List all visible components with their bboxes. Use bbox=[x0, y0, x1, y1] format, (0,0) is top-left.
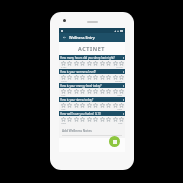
button[interactable]: Rate 8 of 10 bbox=[105, 102, 111, 108]
button[interactable]: Submit wellness entry bbox=[109, 136, 120, 147]
staticText: High bbox=[61, 122, 67, 125]
button[interactable]: Rate 6 of 10 bbox=[92, 74, 98, 80]
button[interactable]: Rate 6 of 10 bbox=[92, 102, 98, 108]
staticText: None bbox=[61, 80, 67, 83]
button[interactable]: Rate 6 of 10 bbox=[92, 116, 98, 122]
button[interactable]: How is your energy level today? bbox=[59, 83, 125, 88]
button[interactable]: Rate 3 of 10 bbox=[73, 60, 79, 66]
button[interactable]: Rate 9 of 10 bbox=[112, 102, 118, 108]
button[interactable]: Rate 2 of 10 bbox=[66, 74, 72, 80]
button[interactable]: Rate 1 of 10 bbox=[60, 74, 66, 80]
button[interactable]: Rate 6 of 10 bbox=[92, 60, 98, 66]
button[interactable]: Rate 5 of 10 bbox=[86, 60, 92, 66]
button[interactable]: Rate 8 of 10 bbox=[105, 60, 111, 66]
staticText: How is your soreness level? bbox=[60, 70, 123, 74]
button[interactable]: Rate 8 of 10 bbox=[105, 88, 111, 94]
button[interactable]: Rate 2 of 10 bbox=[66, 116, 72, 122]
button[interactable]: How well have you fueled 0-10 bbox=[59, 111, 125, 116]
button[interactable]: Rate 2 of 10 bbox=[66, 88, 72, 94]
staticText: Low bbox=[61, 108, 66, 111]
button[interactable]: Rate 3 of 10 bbox=[73, 116, 79, 122]
button[interactable]: Rate 9 of 10 bbox=[112, 74, 118, 80]
button[interactable]: Rate 9 of 10 bbox=[112, 116, 118, 122]
staticText: ACTINET bbox=[78, 45, 106, 52]
button[interactable]: Rate 1 of 10 bbox=[60, 60, 66, 66]
staticText: High bbox=[117, 108, 123, 111]
staticText: 10 hrs bbox=[116, 66, 123, 69]
staticText: How many hours did you sleep last night? bbox=[60, 56, 123, 60]
button[interactable]: Rate 8 of 10 bbox=[105, 74, 111, 80]
staticText: How well have you fueled 0-10 bbox=[60, 112, 123, 116]
button[interactable]: Rate 7 of 10 bbox=[99, 60, 105, 66]
button[interactable]: How many hours did you sleep last night? bbox=[59, 55, 125, 60]
staticText: High bbox=[117, 94, 123, 97]
button[interactable]: Rate 10 of 10 bbox=[118, 88, 124, 94]
button[interactable]: Rate 4 of 10 bbox=[79, 60, 85, 66]
button[interactable]: Rate 7 of 10 bbox=[99, 102, 105, 108]
button[interactable]: Rate 6 of 10 bbox=[92, 88, 98, 94]
staticText: Low bbox=[61, 94, 66, 97]
button[interactable]: Rate 1 of 10 bbox=[60, 88, 66, 94]
staticText: Low bbox=[118, 122, 123, 125]
button[interactable]: Navigate back bbox=[61, 34, 68, 41]
staticText: Add Wellness Notes bbox=[62, 129, 92, 133]
button[interactable]: Rate 3 of 10 bbox=[73, 102, 79, 108]
button[interactable]: How is your stress today? bbox=[59, 97, 125, 102]
button[interactable]: Rate 1 of 10 bbox=[60, 116, 66, 122]
button[interactable]: Rate 4 of 10 bbox=[79, 88, 85, 94]
button[interactable]: Rate 5 of 10 bbox=[86, 102, 92, 108]
button[interactable]: Rate 9 of 10 bbox=[112, 60, 118, 66]
button[interactable]: Rate 2 of 10 bbox=[66, 60, 72, 66]
button[interactable]: Rate 10 of 10 bbox=[118, 74, 124, 80]
button[interactable]: How is your soreness level? bbox=[59, 69, 125, 74]
staticText: Severe bbox=[115, 80, 123, 83]
button[interactable]: Rate 7 of 10 bbox=[99, 74, 105, 80]
button[interactable]: Rate 9 of 10 bbox=[112, 88, 118, 94]
button[interactable]: Rate 4 of 10 bbox=[79, 116, 85, 122]
button[interactable]: Rate 10 of 10 bbox=[118, 102, 124, 108]
button[interactable]: Rate 5 of 10 bbox=[86, 116, 92, 122]
button[interactable]: Rate 3 of 10 bbox=[73, 88, 79, 94]
button[interactable]: Rate 10 of 10 bbox=[118, 60, 124, 66]
staticText: Wellness Entry bbox=[69, 35, 95, 40]
staticText: 0 hrs bbox=[61, 66, 67, 69]
button[interactable]: Rate 5 of 10 bbox=[86, 74, 92, 80]
staticText: How is your stress today? bbox=[60, 98, 123, 102]
button[interactable]: Rate 5 of 10 bbox=[86, 88, 92, 94]
button[interactable]: Rate 8 of 10 bbox=[105, 116, 111, 122]
button[interactable]: Rate 10 of 10 bbox=[118, 116, 124, 122]
staticText: How is your energy level today? bbox=[60, 84, 123, 88]
button[interactable]: Rate 7 of 10 bbox=[99, 116, 105, 122]
button[interactable]: Rate 4 of 10 bbox=[79, 102, 85, 108]
button[interactable]: Rate 4 of 10 bbox=[79, 74, 85, 80]
button[interactable]: Rate 7 of 10 bbox=[99, 88, 105, 94]
button[interactable]: Rate 3 of 10 bbox=[73, 74, 79, 80]
button[interactable]: Rate 2 of 10 bbox=[66, 102, 72, 108]
button[interactable]: Rate 1 of 10 bbox=[60, 102, 66, 108]
